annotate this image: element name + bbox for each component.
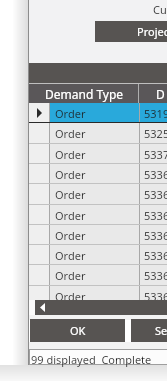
staticText: Order bbox=[55, 228, 86, 243]
button[interactable]: Order bbox=[29, 164, 167, 184]
staticText: Order bbox=[55, 248, 86, 263]
staticText: 53365 bbox=[144, 187, 167, 202]
button[interactable]: Scroll left bbox=[35, 300, 167, 315]
button[interactable]: Order bbox=[29, 205, 167, 225]
staticText: Order bbox=[55, 106, 86, 121]
staticText: Order bbox=[55, 126, 86, 141]
staticText: 53363 bbox=[144, 228, 167, 243]
staticText: 53362 bbox=[144, 248, 167, 263]
staticText: 53364 bbox=[144, 208, 167, 223]
staticText: 53361 bbox=[144, 268, 167, 283]
button[interactable]: Order bbox=[29, 225, 167, 245]
button[interactable]: Order bbox=[29, 184, 167, 204]
staticText: OK bbox=[70, 323, 86, 338]
staticText: Order bbox=[55, 167, 86, 182]
staticText: 53360 bbox=[144, 289, 167, 304]
button[interactable]: Order bbox=[29, 144, 167, 164]
button[interactable]: 99 displayed Complete bbox=[31, 352, 152, 367]
staticText: Cu bbox=[153, 2, 167, 17]
staticText: Order bbox=[55, 289, 86, 304]
staticText: Order bbox=[55, 268, 86, 283]
button[interactable]: Projec bbox=[95, 21, 167, 42]
staticText: Order bbox=[55, 208, 86, 223]
staticText: 53250 bbox=[144, 126, 167, 141]
staticText: D bbox=[156, 86, 165, 102]
button[interactable]: Order bbox=[29, 245, 167, 265]
button[interactable]: Order bbox=[29, 265, 167, 285]
button[interactable]: Order bbox=[29, 286, 167, 306]
staticText: Projec bbox=[137, 24, 167, 39]
staticText: 53366 bbox=[144, 167, 167, 182]
button[interactable]: Order bbox=[29, 123, 167, 143]
staticText: Order bbox=[55, 147, 86, 162]
button[interactable]: OK bbox=[30, 319, 125, 342]
button[interactable]: Order bbox=[29, 103, 167, 123]
button[interactable]: Select All bbox=[131, 319, 167, 342]
staticText: Select All bbox=[155, 323, 167, 338]
staticText: Order bbox=[55, 187, 86, 202]
staticText: 53370 bbox=[144, 147, 167, 162]
staticText: Demand Type bbox=[45, 86, 124, 102]
staticText: 53198 bbox=[144, 106, 167, 121]
